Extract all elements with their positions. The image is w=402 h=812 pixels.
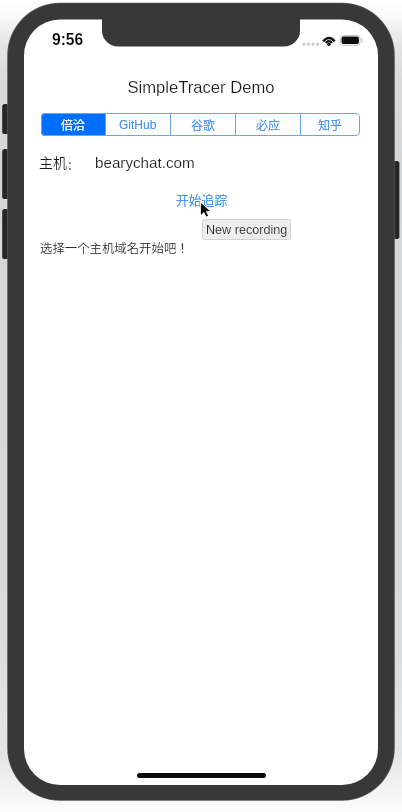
staticText: SimpleTracer Demo: [24, 78, 378, 97]
staticText: GitHub: [119, 118, 157, 131]
staticText: 开始追踪: [176, 190, 228, 209]
staticText: 选择一个主机域名开始吧！: [40, 239, 189, 257]
staticText: 必应: [256, 116, 281, 133]
button[interactable]: 知乎: [301, 113, 360, 136]
staticText: :: [68, 154, 72, 170]
other: Status icons: [300, 30, 366, 48]
staticText: 知乎: [318, 116, 343, 133]
staticText: 9:56: [52, 31, 84, 48]
button[interactable]: 倍洽: [41, 113, 105, 136]
button[interactable]: GitHub: [106, 113, 170, 136]
button[interactable]: 谷歌: [171, 113, 235, 136]
button[interactable]: 必应: [236, 113, 300, 136]
staticText: New recording: [206, 223, 288, 237]
staticText: 主机: [39, 152, 67, 172]
staticText: 倍洽: [61, 116, 86, 133]
staticText: bearychat.com: [95, 154, 195, 171]
button[interactable]: 开始追踪: [176, 190, 228, 209]
staticText: 谷歌: [191, 116, 216, 133]
